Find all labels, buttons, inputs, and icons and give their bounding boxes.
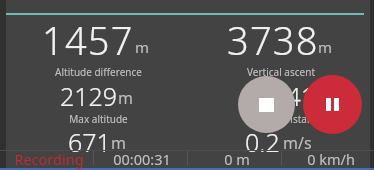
button[interactable]: Recording (2, 149, 95, 169)
button[interactable]: Stop recording (238, 76, 295, 133)
staticText: 0 m (224, 149, 250, 169)
staticText: 3738 (227, 14, 319, 66)
staticText: m (118, 87, 133, 109)
staticText: m (318, 37, 333, 57)
button[interactable]: 0 m (190, 149, 283, 169)
staticText: Vertical ascent (247, 65, 315, 79)
staticText: 0.2 (245, 125, 280, 159)
staticText: m/s (283, 132, 312, 154)
staticText: 1241 (258, 79, 316, 113)
staticText: m (135, 37, 150, 57)
staticText: 0 km/h (307, 149, 355, 169)
staticText: Altitude difference (55, 65, 142, 79)
staticText: 2129 (60, 79, 118, 113)
button[interactable]: 00:00:31 (95, 149, 188, 169)
staticText: Max altitude (69, 112, 128, 126)
staticText: Recording (14, 149, 84, 169)
staticText: 671 (68, 125, 111, 159)
staticText: 1457 (42, 14, 134, 66)
staticText: m (111, 132, 126, 154)
button[interactable]: 0 km/h (284, 149, 374, 169)
staticText: 00:00:31 (113, 149, 171, 169)
button[interactable]: Pause recording (303, 75, 362, 134)
staticText: Distance (283, 112, 324, 126)
staticText: m (313, 87, 328, 109)
